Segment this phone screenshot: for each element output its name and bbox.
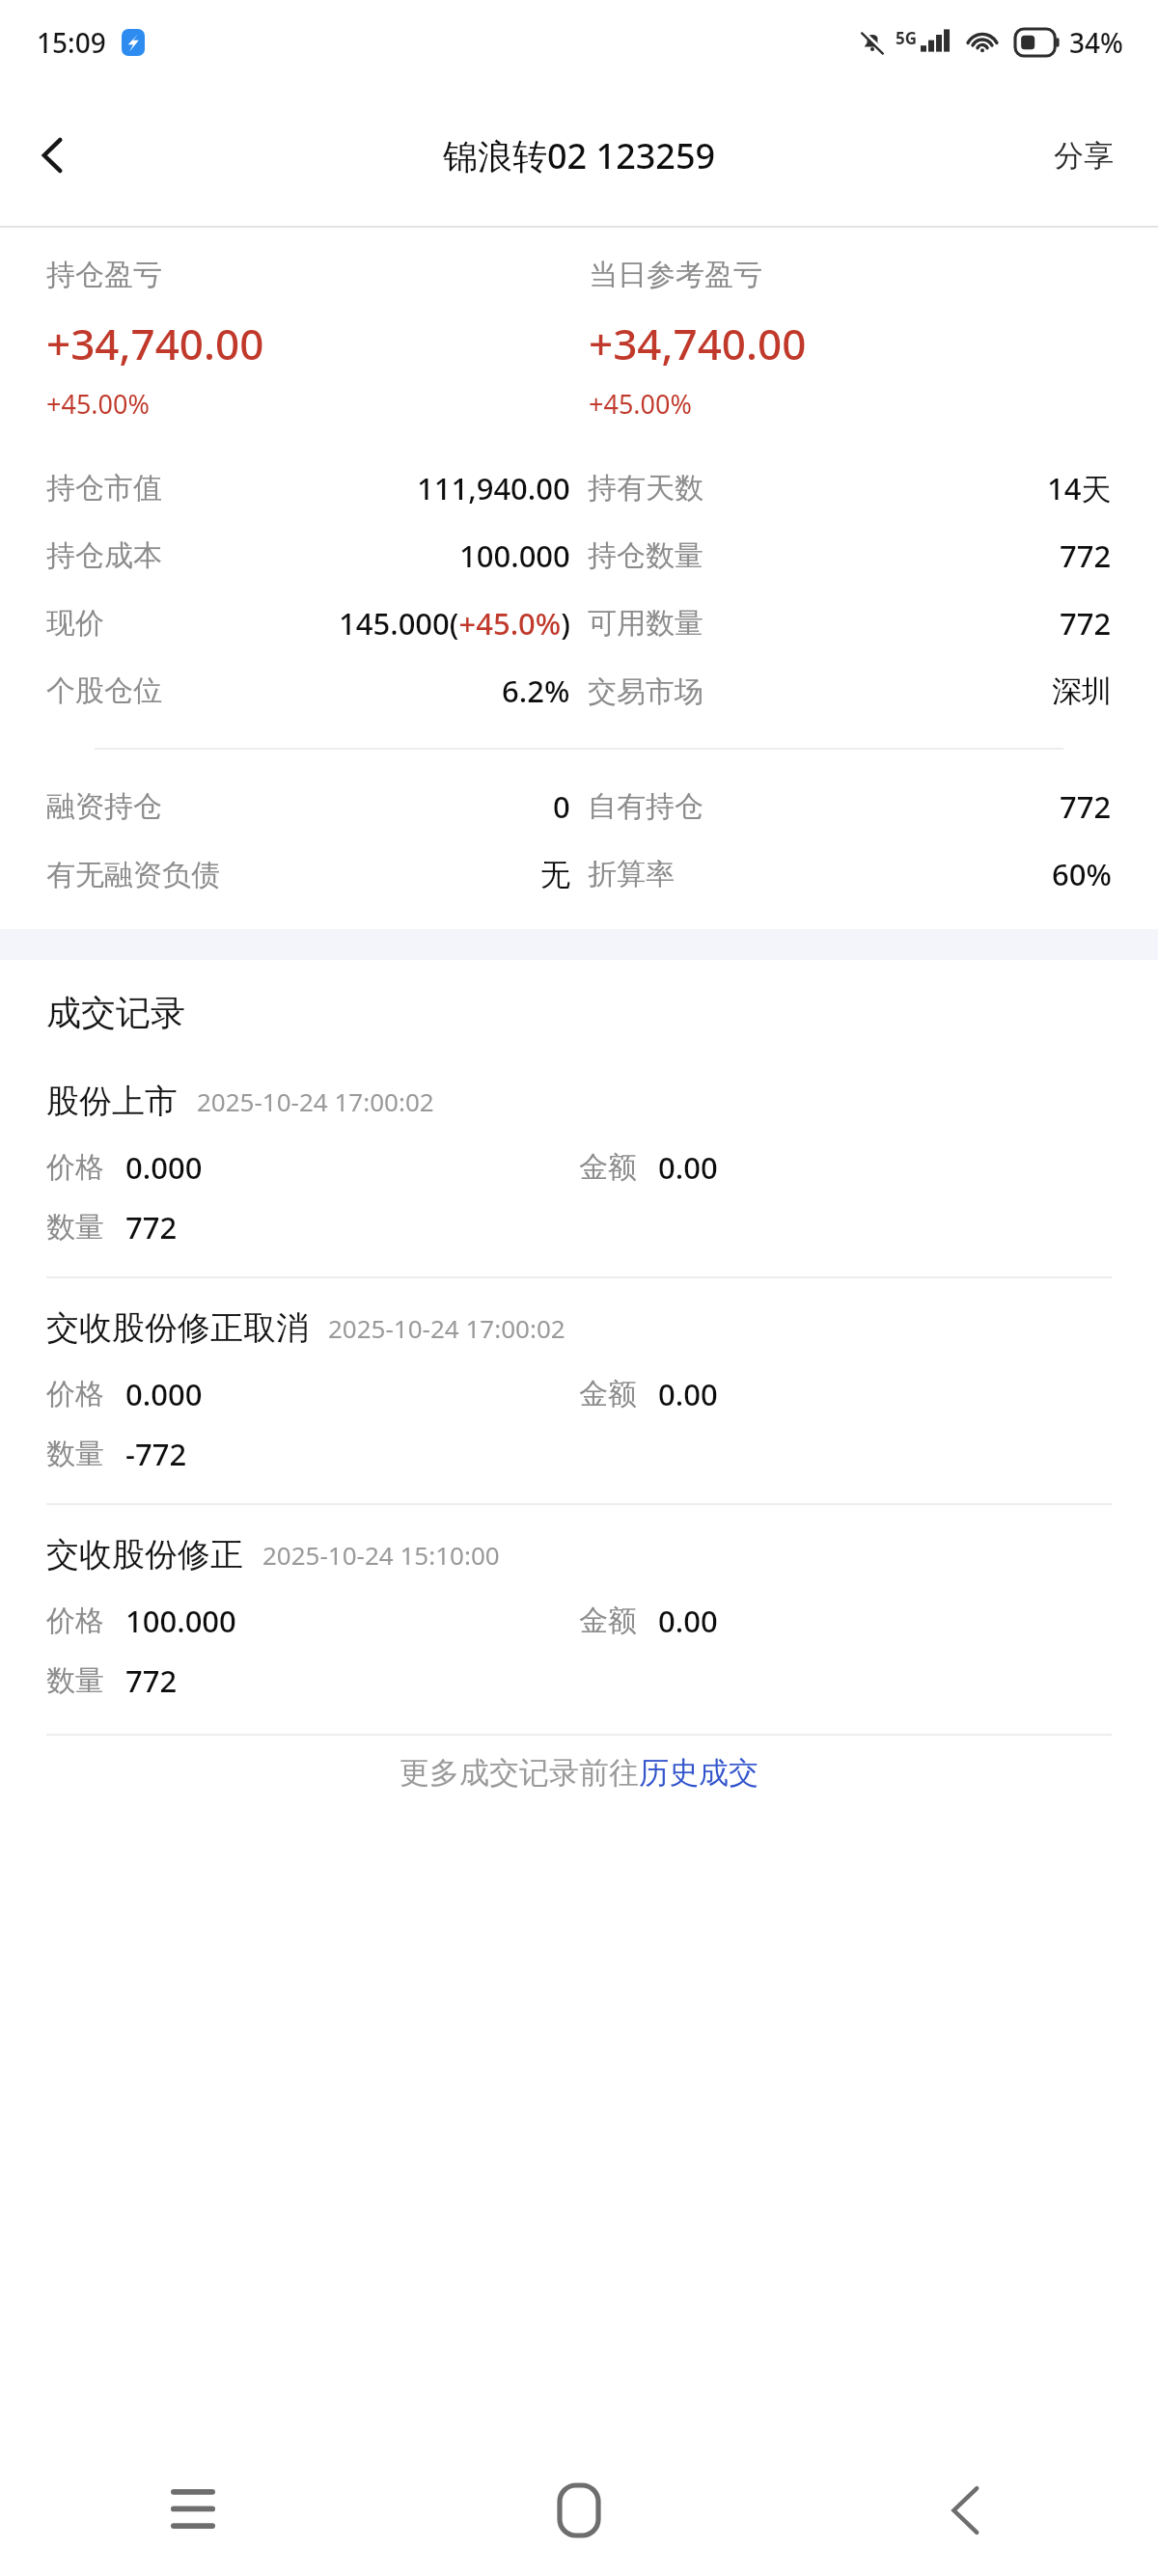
staticText: 融资持仓	[46, 788, 162, 825]
staticText: 0.00	[658, 1147, 718, 1188]
staticText: 100.000	[459, 535, 570, 576]
staticText: 有无融资负债	[46, 857, 220, 893]
button[interactable]: Back	[0, 102, 106, 208]
staticText: 0.000	[125, 1147, 203, 1188]
staticText: 当日参考盈亏	[589, 257, 762, 293]
staticText: 14天	[1047, 468, 1112, 508]
button[interactable]: 更多成交记录前往历史成交	[0, 1736, 1158, 1809]
staticText: 2025-10-24 17:00:02	[197, 1084, 434, 1118]
staticText: 数量	[46, 1662, 104, 1699]
staticText: 0.000	[125, 1374, 203, 1414]
staticText: 持仓盈亏	[46, 257, 162, 293]
staticText: 价格	[46, 1149, 104, 1186]
staticText: 可用数量	[588, 605, 703, 642]
staticText: 145.000(+45.0%)	[339, 603, 570, 644]
staticText: +34,740.00	[46, 315, 264, 372]
staticText: 持有天数	[588, 470, 703, 507]
staticText: 2025-10-24 17:00:02	[328, 1311, 565, 1345]
button[interactable]: Back	[772, 2445, 1158, 2576]
staticText: 股份上市	[46, 1081, 178, 1122]
staticText: 0.00	[658, 1601, 718, 1641]
staticText: 更多成交记录前往历史成交	[400, 1754, 758, 1792]
staticText: 772	[1060, 535, 1112, 576]
staticText: 分享	[1054, 137, 1114, 175]
staticText: 持仓市值	[46, 470, 162, 507]
staticText: 个股仓位	[46, 672, 162, 709]
staticText: 价格	[46, 1603, 104, 1639]
staticText: 772	[1060, 786, 1112, 827]
staticText: 0	[553, 786, 570, 827]
staticText: 0.00	[658, 1374, 718, 1414]
staticText: 现价	[46, 605, 104, 642]
staticText: 交易市场	[588, 673, 703, 710]
button[interactable]: 交收股份修正取消	[0, 1307, 1158, 1474]
staticText: 持仓数量	[588, 537, 703, 574]
staticText: 772	[125, 1660, 178, 1701]
staticText: 772	[1060, 603, 1112, 644]
staticText: +45.00%	[46, 386, 150, 422]
staticText: 金额	[579, 1603, 637, 1639]
staticText: 交收股份修正取消	[46, 1307, 309, 1349]
button[interactable]: 股份上市	[0, 1081, 1158, 1247]
staticText: 持仓成本	[46, 537, 162, 574]
staticText: 数量	[46, 1436, 104, 1472]
button[interactable]: Home	[386, 2445, 772, 2576]
staticText: 自有持仓	[588, 788, 703, 825]
staticText: 成交记录	[46, 991, 185, 1034]
staticText: 金额	[579, 1149, 637, 1186]
staticText: 100.000	[125, 1601, 236, 1641]
button[interactable]: Recents	[0, 2445, 386, 2576]
staticText: -772	[125, 1434, 187, 1474]
staticText: 数量	[46, 1209, 104, 1246]
staticText: 15:09	[37, 24, 106, 61]
staticText: 2025-10-24 15:10:00	[262, 1538, 500, 1572]
staticText: 5G	[896, 27, 918, 49]
button[interactable]: 交收股份修正	[0, 1534, 1158, 1701]
staticText: 金额	[579, 1376, 637, 1412]
button[interactable]: 分享	[1029, 120, 1139, 192]
staticText: 772	[125, 1207, 178, 1247]
staticText: 60%	[1052, 854, 1112, 894]
staticText: 价格	[46, 1376, 104, 1412]
staticText: 折算率	[588, 856, 675, 892]
staticText: 交收股份修正	[46, 1534, 243, 1576]
staticText: 111,940.00	[417, 468, 570, 508]
staticText: +34,740.00	[589, 315, 807, 372]
staticText: 6.2%	[502, 671, 570, 711]
staticText: 34%	[1069, 24, 1123, 61]
staticText: 锦浪转02 123259	[443, 132, 716, 179]
staticText: 无	[540, 856, 570, 893]
staticText: +45.00%	[589, 386, 692, 422]
staticText: 深圳	[1052, 672, 1112, 710]
